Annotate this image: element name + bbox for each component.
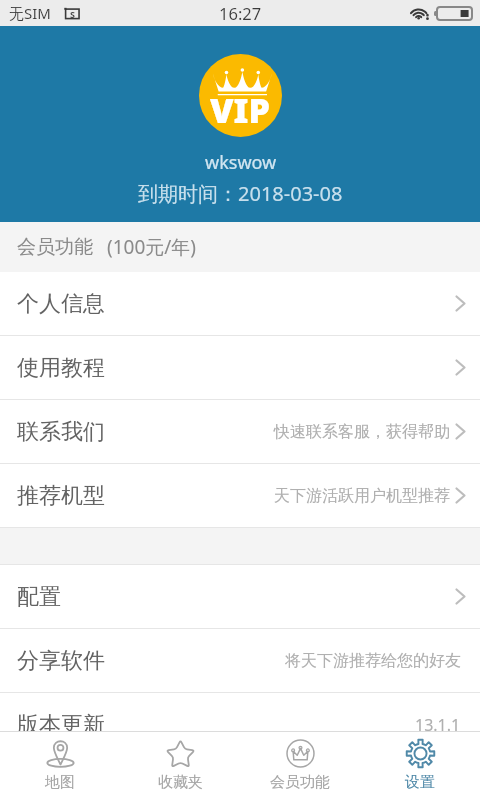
staticText: 版本更新 bbox=[17, 711, 105, 739]
staticText: 个人信息 bbox=[17, 290, 105, 318]
button[interactable]: 配置 bbox=[0, 565, 480, 628]
staticText: 地图 bbox=[45, 773, 75, 792]
staticText: S bbox=[70, 8, 75, 20]
staticText: 13.1.1 bbox=[415, 714, 461, 736]
staticText: wkswow bbox=[205, 150, 277, 175]
button[interactable]: 使用教程 bbox=[0, 336, 480, 399]
staticText: 快速联系客服，获得帮助 bbox=[274, 422, 450, 442]
staticText: 推荐机型 bbox=[17, 482, 105, 510]
button[interactable]: 版本更新 bbox=[0, 693, 480, 756]
button[interactable]: 个人信息 bbox=[0, 272, 480, 335]
button[interactable]: 地图 bbox=[0, 732, 120, 800]
staticText: (100元/年) bbox=[107, 234, 197, 260]
staticText: 分享软件 bbox=[17, 647, 105, 675]
staticText: 设置 bbox=[405, 773, 435, 792]
staticText: 收藏夹 bbox=[158, 773, 203, 792]
staticText: 联系我们 bbox=[17, 418, 105, 446]
staticText: 天下游活跃用户机型推荐 bbox=[274, 486, 450, 506]
other: SIM card bbox=[64, 6, 80, 20]
staticText: 使用教程 bbox=[17, 354, 105, 382]
staticText: 配置 bbox=[17, 583, 61, 611]
staticText: 会员功能 bbox=[270, 773, 330, 792]
button[interactable]: 分享软件 bbox=[0, 629, 480, 692]
staticText: 16:27 bbox=[219, 2, 262, 24]
staticText: 会员功能 bbox=[17, 235, 93, 259]
button[interactable]: 设置 bbox=[360, 732, 480, 800]
other: Wi-Fi bbox=[409, 7, 430, 20]
staticText: 到期时间：2018-03-08 bbox=[138, 180, 343, 207]
staticText: 将天下游推荐给您的好友 bbox=[285, 651, 461, 671]
button[interactable]: 推荐机型 bbox=[0, 464, 480, 527]
button[interactable]: 联系我们 bbox=[0, 400, 480, 463]
staticText: 无SIM bbox=[9, 3, 51, 23]
button[interactable]: 收藏夹 bbox=[120, 732, 240, 800]
button[interactable]: 会员功能 bbox=[240, 732, 360, 800]
other: Battery bbox=[434, 7, 472, 20]
staticText: VIP bbox=[210, 87, 271, 133]
